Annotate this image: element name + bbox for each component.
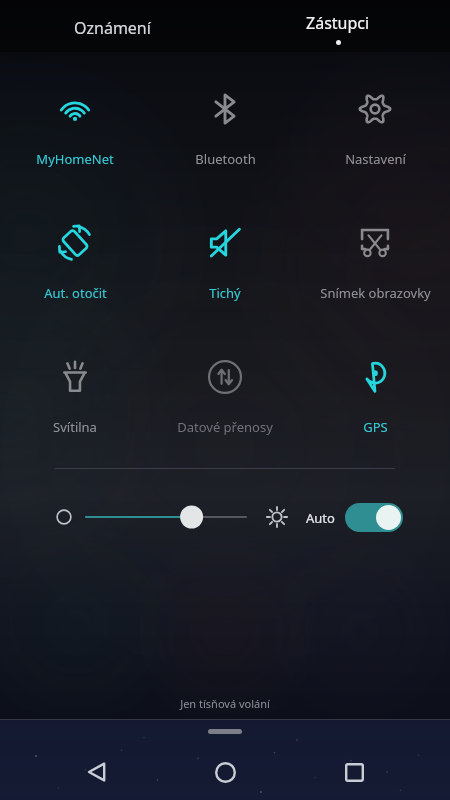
button[interactable]: Svítilna bbox=[0, 354, 150, 436]
button[interactable]: Snímek obrazovky bbox=[300, 220, 450, 302]
button[interactable]: Datové přenosy bbox=[150, 354, 300, 436]
button[interactable]: Bluetooth bbox=[150, 86, 300, 168]
staticText: Bluetooth bbox=[195, 150, 256, 168]
button[interactable]: Zpět bbox=[65, 744, 129, 800]
button[interactable]: MyHomeNet bbox=[0, 86, 150, 168]
button[interactable]: Zavřít panel bbox=[208, 729, 242, 734]
button[interactable]: Jas bbox=[86, 497, 246, 537]
button[interactable]: Maximální jas bbox=[262, 502, 292, 532]
button[interactable]: Tichý bbox=[150, 220, 300, 302]
staticText: Auto bbox=[306, 509, 335, 527]
staticText: Tichý bbox=[209, 284, 241, 302]
staticText: Zástupci bbox=[306, 12, 370, 34]
staticText: Datové přenosy bbox=[177, 418, 273, 436]
button[interactable]: Oznámení bbox=[0, 0, 225, 56]
button[interactable]: GPS bbox=[300, 354, 450, 436]
staticText: Nastavení bbox=[345, 150, 406, 168]
button[interactable]: Aut. otočit bbox=[0, 220, 150, 302]
staticText: Aut. otočit bbox=[44, 284, 107, 302]
staticText: Oznámení bbox=[74, 17, 151, 39]
button[interactable]: Minimální jas bbox=[50, 503, 78, 531]
button[interactable]: Domů bbox=[193, 744, 257, 800]
staticText: Snímek obrazovky bbox=[320, 284, 431, 302]
button[interactable]: Zástupci bbox=[225, 0, 450, 56]
staticText: GPS bbox=[363, 418, 388, 436]
staticText: MyHomeNet bbox=[36, 150, 114, 168]
staticText: Jen tísňová volání bbox=[0, 696, 450, 711]
staticText: Svítilna bbox=[53, 418, 97, 436]
button[interactable]: Nastavení bbox=[300, 86, 450, 168]
button[interactable]: Přehled aplikací bbox=[322, 744, 386, 800]
button[interactable]: Auto bbox=[306, 503, 403, 532]
